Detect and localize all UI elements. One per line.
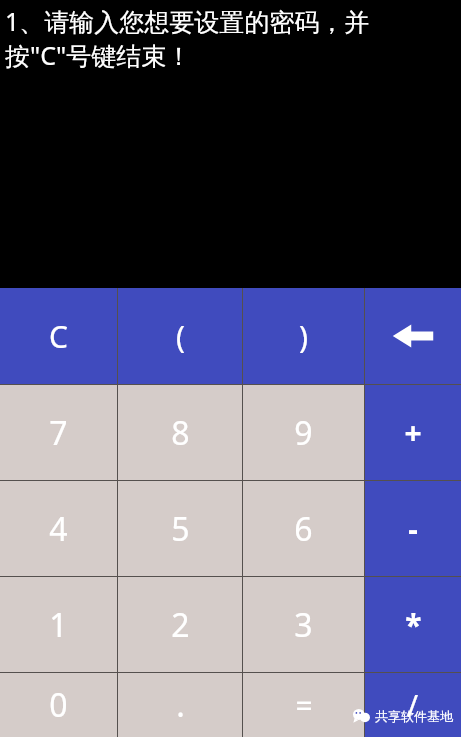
button[interactable]: 3 [243, 577, 364, 672]
button[interactable]: ( [118, 288, 242, 384]
staticText: 5 [171, 507, 190, 551]
button[interactable]: ) [243, 288, 364, 384]
button[interactable]: + [365, 385, 461, 480]
staticText: 2 [171, 603, 190, 647]
staticText: 4 [49, 507, 68, 551]
staticText: . [176, 683, 185, 727]
staticText: 3 [294, 603, 313, 647]
staticText: ( [176, 316, 185, 357]
staticText: 6 [294, 507, 313, 551]
staticText: / [407, 685, 419, 726]
button[interactable]: / [365, 673, 461, 737]
button[interactable]: C [0, 288, 117, 384]
button[interactable]: 8 [118, 385, 242, 480]
button[interactable]: 5 [118, 481, 242, 576]
button[interactable]: 2 [118, 577, 242, 672]
button[interactable]: 4 [0, 481, 117, 576]
staticText: 共享软件基地 [375, 708, 453, 724]
button[interactable]: - [365, 481, 461, 576]
staticText: 9 [294, 411, 313, 455]
button[interactable]: 9 [243, 385, 364, 480]
staticText: + [404, 412, 422, 453]
staticText: ) [299, 316, 308, 357]
staticText: 1 [49, 603, 68, 647]
button[interactable]: = [243, 673, 364, 737]
button[interactable]: 7 [0, 385, 117, 480]
button[interactable]: * [365, 577, 461, 672]
staticText: 0 [49, 683, 68, 727]
button[interactable]: 6 [243, 481, 364, 576]
staticText: 7 [49, 411, 68, 455]
staticText: C [49, 316, 68, 357]
staticText: * [405, 604, 422, 645]
staticText: 1、请输入您想要设置的密码，并 [5, 4, 370, 38]
button[interactable]: Backspace [365, 288, 461, 384]
button[interactable]: 1 [0, 577, 117, 672]
staticText: - [408, 508, 418, 549]
staticText: = [295, 685, 313, 726]
button[interactable]: 0 [0, 673, 117, 737]
staticText: 按"C"号键结束！ [5, 38, 192, 72]
staticText: 8 [171, 411, 190, 455]
